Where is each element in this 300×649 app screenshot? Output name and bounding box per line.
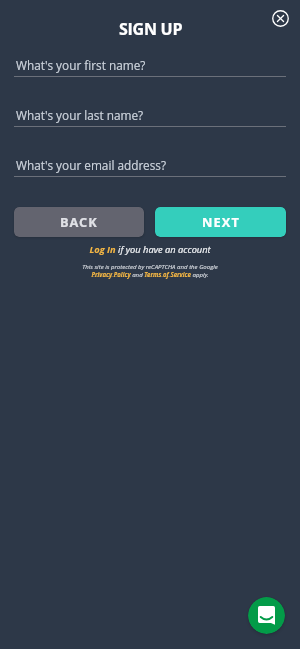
button[interactable]: Open messenger — [248, 597, 285, 634]
staticText: BACK — [60, 213, 98, 230]
staticText: What's your last name? — [16, 107, 144, 123]
staticText: What's your first name? — [16, 57, 146, 73]
button[interactable]: Close — [268, 6, 293, 31]
button[interactable]: What's your first name? — [14, 57, 286, 77]
button[interactable]: Log In if you have an account — [14, 243, 286, 256]
staticText: NEXT — [202, 213, 240, 230]
button[interactable]: What's your last name? — [14, 107, 286, 127]
staticText: SIGN UP — [119, 18, 183, 40]
button[interactable]: What's your email address? — [14, 157, 286, 177]
button[interactable]: BACK — [14, 207, 144, 237]
staticText: This site is protected by reCAPTCHA and … — [14, 262, 286, 278]
staticText: What's your email address? — [16, 157, 166, 173]
button[interactable]: NEXT — [155, 207, 286, 237]
